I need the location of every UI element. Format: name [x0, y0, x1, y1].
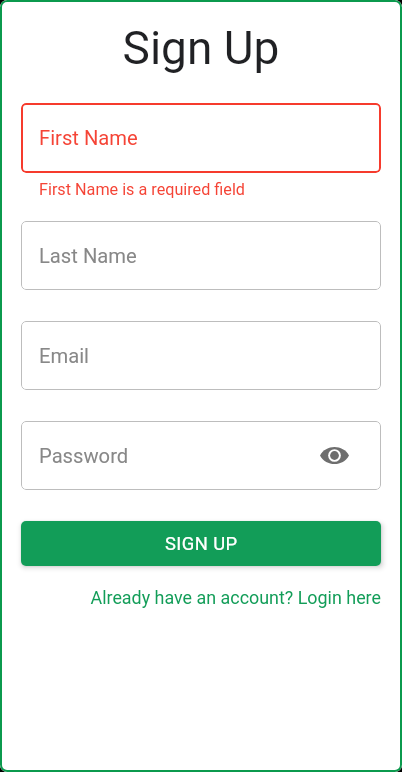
button[interactable]: Password — [21, 421, 381, 490]
button[interactable]: First Name — [21, 103, 381, 173]
button[interactable]: SIGN UP — [21, 521, 381, 566]
staticText: Email — [39, 344, 89, 368]
staticText: Already have an account? Login here — [0, 587, 381, 608]
button[interactable]: Last Name — [21, 221, 381, 290]
staticText: SIGN UP — [165, 533, 238, 555]
button[interactable]: Already have an account? Login here — [0, 583, 402, 611]
staticText: Last Name — [39, 244, 137, 268]
staticText: First Name — [39, 126, 138, 150]
staticText: First Name is a required field — [39, 180, 245, 199]
button[interactable]: Email — [21, 321, 381, 390]
staticText: Sign Up — [0, 21, 402, 75]
staticText: Password — [39, 444, 129, 468]
button[interactable]: Show password — [316, 438, 352, 474]
